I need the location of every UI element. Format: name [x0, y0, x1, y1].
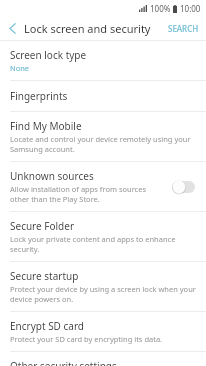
- staticText: Find My Mobile: [10, 119, 82, 133]
- staticText: Other security settings: [10, 359, 117, 366]
- staticText: Allow installation of apps from sources …: [10, 184, 163, 204]
- button[interactable]: Secure Folder: [0, 212, 206, 261]
- staticText: Lock screen and security: [24, 21, 161, 36]
- staticText: Protect your SD card by encrypting its d…: [10, 334, 163, 344]
- button[interactable]: Back: [0, 16, 24, 40]
- staticText: SEARCH: [168, 23, 199, 34]
- button[interactable]: Secure startup: [0, 262, 206, 311]
- staticText: Unknown sources: [10, 169, 94, 183]
- button[interactable]: Screen lock type: [0, 41, 206, 80]
- staticText: Lock your private content and apps to en…: [10, 234, 198, 254]
- staticText: Screen lock type: [10, 48, 87, 62]
- button[interactable]: Find My Mobile: [0, 112, 206, 161]
- staticText: Fingerprints: [10, 89, 68, 103]
- button[interactable]: Other security settings: [0, 352, 206, 366]
- staticText: Locate and control your device remotely …: [10, 134, 198, 154]
- staticText: 100%: [150, 3, 171, 14]
- staticText: Encrypt SD card: [10, 319, 85, 333]
- staticText: 10:00: [180, 3, 201, 14]
- button[interactable]: Encrypt SD card: [0, 312, 206, 351]
- button[interactable]: Unknown sources: [0, 162, 206, 211]
- staticText: None: [10, 63, 30, 73]
- staticText: Secure Folder: [10, 219, 75, 233]
- staticText: Secure startup: [10, 269, 79, 283]
- button[interactable]: Unknown sources toggle: [169, 177, 198, 197]
- staticText: Protect your device by using a screen lo…: [10, 284, 198, 304]
- button[interactable]: Fingerprints: [0, 81, 206, 111]
- button[interactable]: SEARCH: [161, 19, 206, 38]
